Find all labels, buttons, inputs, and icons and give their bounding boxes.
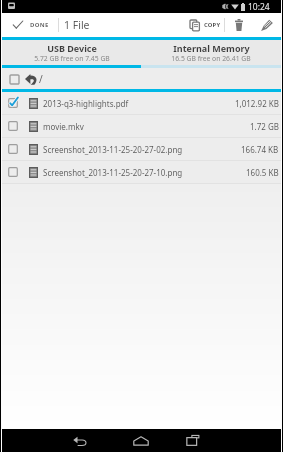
staticText: 2013-q3-highlights.pdf	[43, 98, 129, 109]
staticText: DONE	[30, 21, 49, 29]
staticText: movie.mkv	[43, 121, 84, 132]
staticText: Screenshot_2013-11-25-20-27-02.png	[43, 144, 183, 155]
button[interactable]: Screenshot_2013-11-25-20-27-10.png	[2, 161, 281, 183]
button[interactable]: Internal Memory	[141, 40, 281, 65]
button[interactable]: 2013-q3-highlights.pdf	[2, 92, 281, 114]
button[interactable]: Recent apps	[172, 429, 214, 452]
staticText: 166.74 KB	[241, 144, 279, 155]
staticText: 1,012.92 KB	[235, 98, 279, 109]
staticText: 1 File	[64, 18, 90, 32]
button[interactable]: Back	[69, 429, 111, 452]
button[interactable]: COPY	[185, 13, 224, 37]
button[interactable]: Screenshot_2013-11-25-20-27-02.png	[2, 138, 281, 160]
staticText: 1.72 GB	[250, 121, 279, 132]
staticText: 10:24	[248, 1, 270, 13]
staticText: 5.72 GB free on 7.45 GB	[34, 54, 110, 63]
button[interactable]: movie.mkv	[2, 115, 281, 137]
button[interactable]: Up one level	[24, 72, 38, 86]
button[interactable]: Rename	[254, 13, 281, 37]
staticText: 16.5 GB free on 26.41 GB	[171, 54, 251, 63]
staticText: USB Device	[47, 42, 97, 54]
button[interactable]: Home	[120, 429, 162, 452]
staticText: /	[39, 72, 43, 86]
staticText: COPY	[204, 21, 221, 29]
button[interactable]: DONE	[2, 13, 58, 37]
staticText: Screenshot_2013-11-25-20-27-10.png	[43, 167, 183, 178]
staticText: 160.5 KB	[246, 167, 279, 178]
staticText: Internal Memory	[173, 42, 250, 54]
button[interactable]: USB Device	[2, 40, 141, 65]
button[interactable]: Delete	[225, 13, 254, 37]
button[interactable]: Select all	[6, 71, 22, 87]
